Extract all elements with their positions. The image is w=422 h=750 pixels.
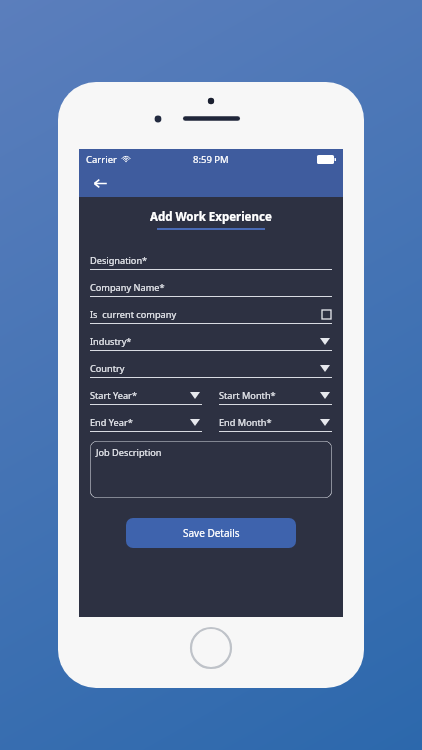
- staticText: Save Details: [183, 526, 240, 540]
- button[interactable]: End Month*: [219, 414, 332, 432]
- staticText: Carrier: [86, 153, 117, 166]
- button[interactable]: Job Description: [90, 441, 332, 498]
- button[interactable]: Company Name*: [90, 279, 332, 297]
- staticText: Start Month*: [219, 389, 276, 402]
- button[interactable]: End Year*: [90, 414, 202, 432]
- staticText: Start Year*: [90, 389, 137, 402]
- button[interactable]: Designation*: [90, 252, 332, 270]
- staticText: End Month*: [219, 416, 272, 429]
- button[interactable]: Industry*: [90, 333, 332, 351]
- staticText: Is current company: [90, 308, 177, 321]
- button[interactable]: Is current company: [90, 306, 332, 324]
- staticText: Company Name*: [90, 281, 165, 294]
- staticText: Industry*: [90, 335, 132, 348]
- button[interactable]: Country: [90, 360, 332, 378]
- staticText: Country: [90, 362, 125, 375]
- button[interactable]: Save Details: [126, 518, 296, 548]
- staticText: End Year*: [90, 416, 133, 429]
- button[interactable]: Start Month*: [219, 387, 332, 405]
- staticText: Job Description: [96, 446, 162, 459]
- button[interactable]: Start Year*: [90, 387, 202, 405]
- staticText: Add Work Experience: [150, 209, 272, 225]
- staticText: Designation*: [90, 254, 148, 267]
- staticText: 8:59 PM: [193, 153, 229, 166]
- button[interactable]: Back: [87, 170, 113, 196]
